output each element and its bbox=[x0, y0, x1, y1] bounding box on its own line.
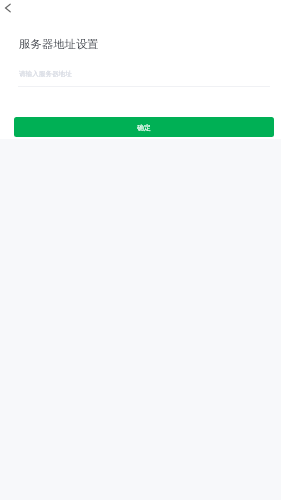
button[interactable]: Back bbox=[0, 0, 16, 16]
button[interactable]: 请输入服务器地址 bbox=[18, 62, 270, 87]
staticText: 请输入服务器地址 bbox=[19, 70, 72, 78]
staticText: 确定 bbox=[137, 123, 151, 132]
staticText: 服务器地址设置 bbox=[19, 37, 99, 51]
button[interactable]: 确定 bbox=[14, 117, 274, 137]
